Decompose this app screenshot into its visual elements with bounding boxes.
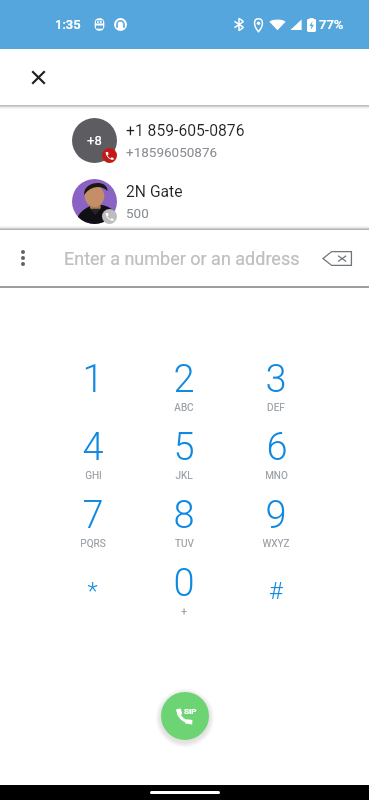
button[interactable]: Backspace xyxy=(315,236,359,280)
button[interactable]: 6 xyxy=(230,425,322,493)
staticText: Enter a number or an address xyxy=(64,248,300,269)
staticText: 3 xyxy=(265,357,287,402)
staticText: SIP xyxy=(184,707,197,716)
button[interactable]: 5 xyxy=(138,425,230,493)
button[interactable]: * xyxy=(47,561,138,629)
staticText: WXYZ xyxy=(262,538,290,550)
staticText: PQRS xyxy=(80,538,106,550)
staticText: +1 859-605-0876 xyxy=(126,121,245,139)
button[interactable]: +8 xyxy=(0,110,369,168)
staticText: 8 xyxy=(173,493,195,538)
staticText: 9 xyxy=(265,493,287,538)
button[interactable]: 7 xyxy=(47,493,138,561)
button[interactable]: SIP call xyxy=(161,692,209,740)
staticText: +18596050876 xyxy=(126,144,218,160)
button[interactable]: 1 xyxy=(47,357,138,425)
staticText: 2 xyxy=(173,357,195,402)
staticText: ABC xyxy=(174,402,194,414)
staticText: 5 xyxy=(173,425,195,470)
staticText: TUV xyxy=(175,538,194,550)
staticText: 2N Gate xyxy=(126,182,183,200)
staticText: JKL xyxy=(175,470,193,482)
button[interactable]: 2 xyxy=(138,357,230,425)
button[interactable]: # xyxy=(230,561,322,629)
button[interactable]: 8 xyxy=(138,493,230,561)
button[interactable]: Close xyxy=(14,53,62,101)
staticText: 0 xyxy=(173,561,195,606)
button[interactable]: More options xyxy=(3,238,43,278)
staticText: DEF xyxy=(267,402,285,414)
staticText: 7 xyxy=(82,493,104,538)
staticText: GHI xyxy=(85,470,102,482)
button[interactable]: 0 xyxy=(138,561,230,629)
staticText: 77% xyxy=(319,17,344,32)
staticText: 6 xyxy=(266,425,288,470)
staticText: + xyxy=(181,606,187,618)
staticText: 4 xyxy=(82,425,104,470)
staticText: 1 xyxy=(82,357,104,402)
staticText: MNO xyxy=(265,470,288,482)
staticText: +8 xyxy=(87,133,102,148)
button[interactable]: 3 xyxy=(230,357,322,425)
staticText: # xyxy=(269,577,283,605)
button[interactable]: 2N Gate xyxy=(0,168,369,226)
button[interactable]: 4 xyxy=(47,425,138,493)
staticText: 500 xyxy=(126,205,149,221)
staticText: 1:35 xyxy=(55,17,81,32)
button[interactable]: 9 xyxy=(230,493,322,561)
staticText: * xyxy=(87,577,98,605)
